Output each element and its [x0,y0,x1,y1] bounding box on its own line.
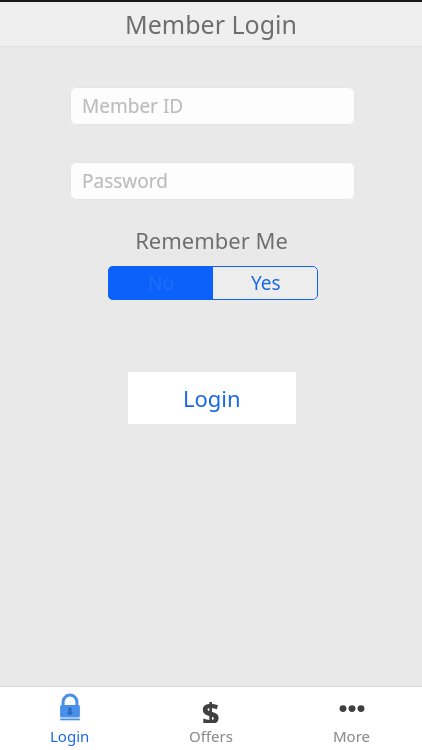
staticText: $ [202,693,220,723]
staticText: Login [183,383,241,413]
button[interactable]: Password [70,162,355,200]
staticText: More [333,726,371,746]
staticText: Member ID [82,93,184,119]
staticText: Password [82,168,168,194]
button[interactable]: No [108,266,213,300]
button[interactable]: More [281,687,422,750]
staticText: Offers [189,726,233,746]
button[interactable]: Yes [213,266,318,300]
staticText: No [148,270,174,296]
staticText: Member Login [125,7,297,41]
button[interactable]: Member ID [70,87,355,125]
staticText: Remember Me [135,225,288,255]
button[interactable]: Login [128,372,296,424]
staticText: Login [50,726,90,746]
staticText: Yes [251,270,281,296]
button[interactable]: Login [0,687,140,750]
button[interactable]: Offers [140,687,281,750]
